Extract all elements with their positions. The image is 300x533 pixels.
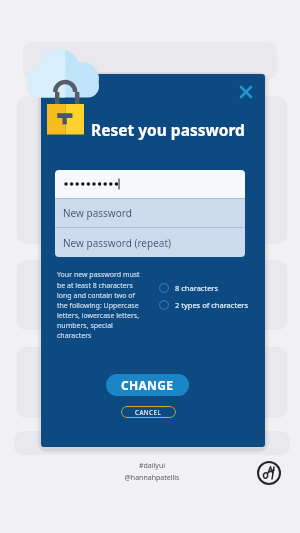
- staticText: New password: [63, 206, 132, 220]
- staticText: CANCEL: [135, 408, 162, 416]
- staticText: #dailyui @hannahpatellis: [92, 461, 212, 482]
- staticText: Your new password must be at least 8 cha…: [57, 270, 140, 340]
- staticText: CHANGE: [121, 377, 174, 393]
- button[interactable]: CHANGE: [106, 374, 189, 396]
- staticText: 2 types of characters: [175, 300, 249, 310]
- button[interactable]: New password: [55, 199, 245, 227]
- button[interactable]: CANCEL: [121, 406, 176, 418]
- button[interactable]: [55, 170, 245, 198]
- staticText: New password (repeat): [63, 236, 172, 250]
- button[interactable]: New password (repeat): [55, 228, 245, 257]
- button[interactable]: [237, 83, 255, 101]
- staticText: 8 characters: [175, 283, 219, 293]
- button[interactable]: [257, 461, 281, 485]
- staticText: Reset you password: [91, 119, 245, 140]
